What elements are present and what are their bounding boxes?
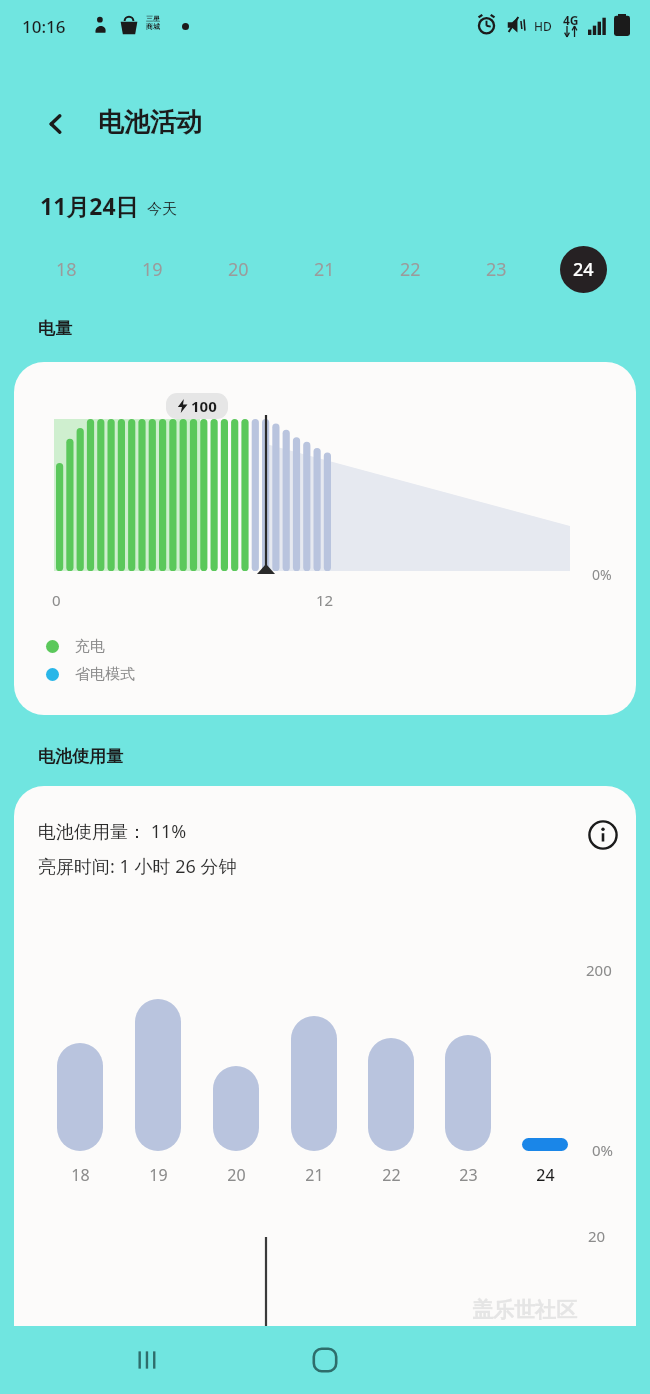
staticText: 电池活动 [98,106,202,139]
staticText: 三星 商城 [146,14,160,31]
staticText: 0% [592,565,612,584]
staticText: 20 [588,1226,606,1246]
staticText: 电池使用量： 11% [38,819,187,844]
staticText: 100 [191,396,217,416]
button[interactable]: Home [287,1326,363,1394]
button[interactable]: Back [28,96,84,152]
staticText: 电量 [38,318,72,339]
staticText: 4G [563,12,579,28]
staticText: 23 [486,257,507,282]
button[interactable]: 20 [211,242,265,296]
staticText: 充电 [75,637,105,656]
staticText: 19 [149,1164,168,1186]
button[interactable]: 19 [134,1158,182,1192]
staticText: 21 [314,257,335,282]
button[interactable]: Info [580,812,626,858]
staticText: 0 [52,590,61,610]
button[interactable]: 20 [212,1158,260,1192]
staticText: 22 [382,1164,401,1186]
staticText: 22 [400,257,421,282]
button[interactable]: 100 [14,362,636,715]
staticText: 11月24日 [40,190,139,221]
staticText: 200 [586,960,612,980]
button[interactable]: Recents [110,1326,186,1394]
staticText: 21 [305,1164,324,1186]
staticText: 18 [56,257,77,282]
staticText: 电池使用量 [38,746,123,767]
button[interactable]: 22 [367,1158,415,1192]
staticText: 20 [227,1164,246,1186]
staticText: HD [534,18,552,34]
staticText: 10:16 [22,15,66,38]
button[interactable]: 22 [383,242,437,296]
button[interactable]: 18 [39,242,93,296]
button[interactable]: 24 [521,1158,569,1192]
staticText: 省电模式 [75,665,135,684]
staticText: 20 [228,257,249,282]
staticText: 18 [71,1164,90,1186]
button[interactable]: 21 [297,242,351,296]
button[interactable]: 21 [290,1158,338,1192]
button[interactable]: 23 [469,242,523,296]
staticText: 12 [316,590,334,610]
staticText: 24 [573,257,594,282]
staticText: 亮屏时间: 1 小时 26 分钟 [38,854,237,879]
staticText: 今天 [147,200,177,219]
button[interactable]: 18 [56,1158,104,1192]
staticText: 0% [592,1140,614,1160]
staticText: 23 [459,1164,478,1186]
button[interactable]: 24 [556,242,610,296]
staticText: 19 [142,257,163,282]
staticText: 盖乐世社区 [472,1297,577,1323]
staticText: 24 [536,1164,555,1186]
button[interactable]: 19 [125,242,179,296]
button[interactable]: 23 [444,1158,492,1192]
